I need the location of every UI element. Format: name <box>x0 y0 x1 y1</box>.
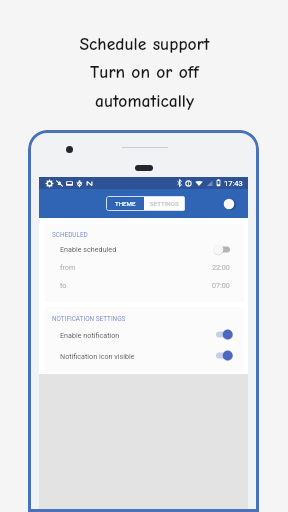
staticText: Enable scheduled <box>60 245 117 253</box>
staticText: 07:00 <box>212 281 230 289</box>
button[interactable]: Notification icon visible <box>45 345 244 366</box>
staticText: 17:43 <box>224 179 243 188</box>
staticText: SETTINGS <box>150 200 179 207</box>
staticText: Schedule support Turn on or off automati… <box>79 34 210 112</box>
button[interactable]: to <box>45 276 244 294</box>
staticText: Notification icon visible <box>60 352 135 360</box>
button[interactable]: THEME <box>106 196 144 211</box>
button[interactable]: Enable notification <box>45 324 244 345</box>
button[interactable]: from <box>45 258 244 276</box>
staticText: from <box>60 263 76 271</box>
staticText: 22:00 <box>212 263 230 271</box>
staticText: to <box>60 281 67 289</box>
button[interactable]: SETTINGS <box>144 196 185 211</box>
staticText: THEME <box>115 200 136 207</box>
button[interactable]: Enable scheduled <box>45 240 244 258</box>
button[interactable]: Pick accent colour <box>221 196 237 212</box>
staticText: SCHEDULED <box>52 231 88 239</box>
staticText: Enable notification <box>60 331 120 339</box>
staticText: NOTIFICATION SETTINGS <box>52 315 126 323</box>
